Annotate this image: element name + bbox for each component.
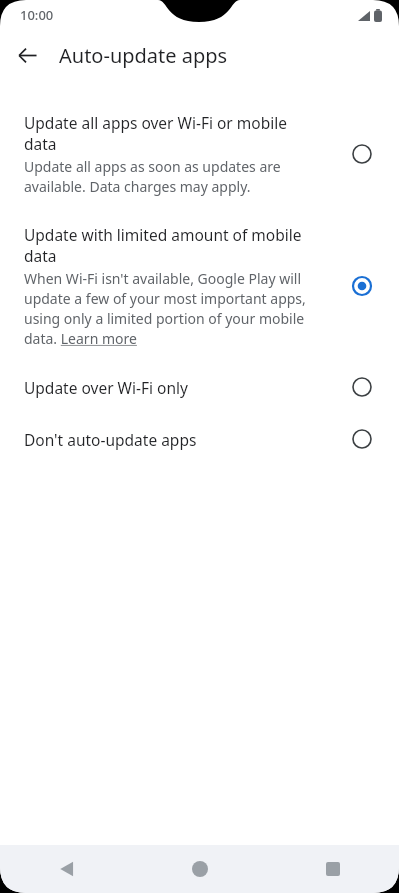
staticText: Update all apps over Wi-Fi or mobile dat…	[24, 112, 321, 155]
staticText: Don't auto-update apps	[24, 429, 197, 450]
button[interactable]: Update all apps over Wi-Fi or mobile dat…	[0, 112, 399, 196]
button[interactable]: Home	[133, 845, 266, 893]
button[interactable]: Update over Wi-Fi only	[0, 372, 399, 402]
staticText: Auto-update apps	[59, 42, 228, 69]
staticText: Update over Wi-Fi only	[24, 377, 188, 398]
button[interactable]: Back	[9, 37, 45, 73]
button[interactable]: Update with limited amount of mobile dat…	[0, 224, 399, 348]
staticText: 10:00	[20, 6, 54, 24]
button[interactable]: Back	[0, 845, 133, 893]
button[interactable]: Don't auto-update apps	[0, 424, 399, 454]
staticText: Update all apps as soon as updates are a…	[24, 157, 321, 196]
staticText: When Wi-Fi isn't available, Google Play …	[24, 269, 321, 348]
button[interactable]: Recent apps	[266, 845, 399, 893]
staticText: Update with limited amount of mobile dat…	[24, 224, 321, 267]
